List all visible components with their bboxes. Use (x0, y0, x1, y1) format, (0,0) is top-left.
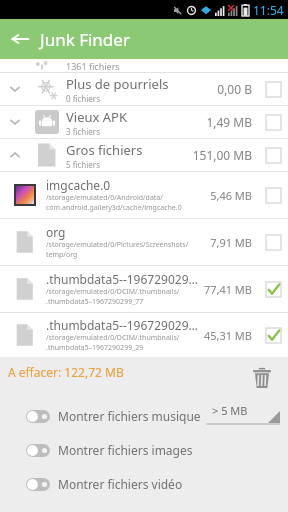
staticText: .thumbdata5–1967290299_77 (46, 297, 144, 307)
staticText: > 5 MB (212, 403, 248, 418)
staticText: 7,91 MB (210, 235, 252, 250)
staticText: org (46, 224, 66, 240)
staticText: temp/org (46, 250, 78, 260)
button[interactable]: Expand (0, 73, 30, 105)
button[interactable]: > 5 MB (206, 403, 280, 432)
staticText: 3 fichiers (66, 126, 100, 137)
staticText: .thumbdata5–1967290299_29 (46, 343, 144, 353)
button[interactable]: Montrer fichiers vidéo (26, 467, 288, 501)
staticText: 0 fichiers (66, 93, 100, 104)
button[interactable]: Montrer fichiers images (26, 433, 288, 467)
button[interactable]: Expand (0, 106, 30, 138)
button[interactable]: Collapse (0, 139, 30, 171)
staticText: /storage/emulated/0/Pictures/Screenshots… (46, 240, 189, 250)
staticText: /storage/emulated/0/DCIM/.thumbnails/ (46, 287, 180, 297)
staticText: 0,00 B (217, 81, 252, 97)
staticText: .thumbdata5--1967290299_29 (46, 317, 203, 333)
button[interactable]: Collapse (0, 139, 288, 171)
staticText: 1,49 MB (206, 114, 252, 130)
staticText: A effacer: 122,72 MB (8, 364, 244, 380)
staticText: Montrer fichiers vidéo (58, 476, 183, 492)
staticText: Montrer fichiers musique (58, 408, 201, 424)
staticText: 5,46 MB (210, 188, 252, 203)
staticText: 5 fichiers (66, 159, 100, 170)
button[interactable]: Delete (244, 360, 280, 396)
staticText: imgcache.0 (46, 177, 111, 193)
staticText: Vieux APK (66, 108, 127, 126)
staticText: com.android.gallery3d/cache/imgcache.0 (46, 203, 182, 213)
button[interactable]: .thumbdata5--1967290299_77 (0, 266, 288, 312)
button[interactable]: Montrer fichiers musique (26, 399, 288, 433)
staticText: 77,41 MB (203, 282, 252, 297)
button[interactable]: Expand (0, 106, 288, 138)
button[interactable]: Expand (0, 73, 288, 105)
button[interactable]: 1361 fichiers (0, 59, 288, 72)
staticText: /storage/emulated/0/DCIM/.thumbnails/ (46, 333, 180, 343)
staticText: 1361 fichiers (66, 60, 120, 72)
button[interactable]: Select Gros fichiers (258, 139, 288, 171)
button[interactable]: .thumbdata5--1967290299_29 (0, 313, 288, 357)
staticText: Plus de pourriels (66, 75, 169, 93)
button[interactable]: Select .thumbdata5--1967290299_29 (258, 313, 288, 357)
staticText: Montrer fichiers images (58, 442, 193, 458)
button[interactable]: Back (0, 19, 40, 59)
staticText: 151,00 MB (192, 147, 252, 163)
button[interactable]: Select imgcache.0 (258, 172, 288, 218)
staticText: Junk Finder (40, 28, 130, 51)
staticText: Gros fichiers (66, 141, 143, 159)
button[interactable]: Select org (258, 219, 288, 265)
staticText: .thumbdata5--1967290299_77 (46, 271, 203, 287)
button[interactable]: imgcache.0 (0, 172, 288, 218)
staticText: /storage/emulated/0/Android/data/ (46, 193, 163, 203)
staticText: 45,31 MB (203, 328, 252, 343)
button[interactable]: Select Vieux APK (258, 106, 288, 138)
button[interactable]: org (0, 219, 288, 265)
staticText: 11:54 (253, 2, 284, 18)
button[interactable]: Select Plus de pourriels (258, 73, 288, 105)
button[interactable]: Select .thumbdata5--1967290299_77 (258, 266, 288, 312)
